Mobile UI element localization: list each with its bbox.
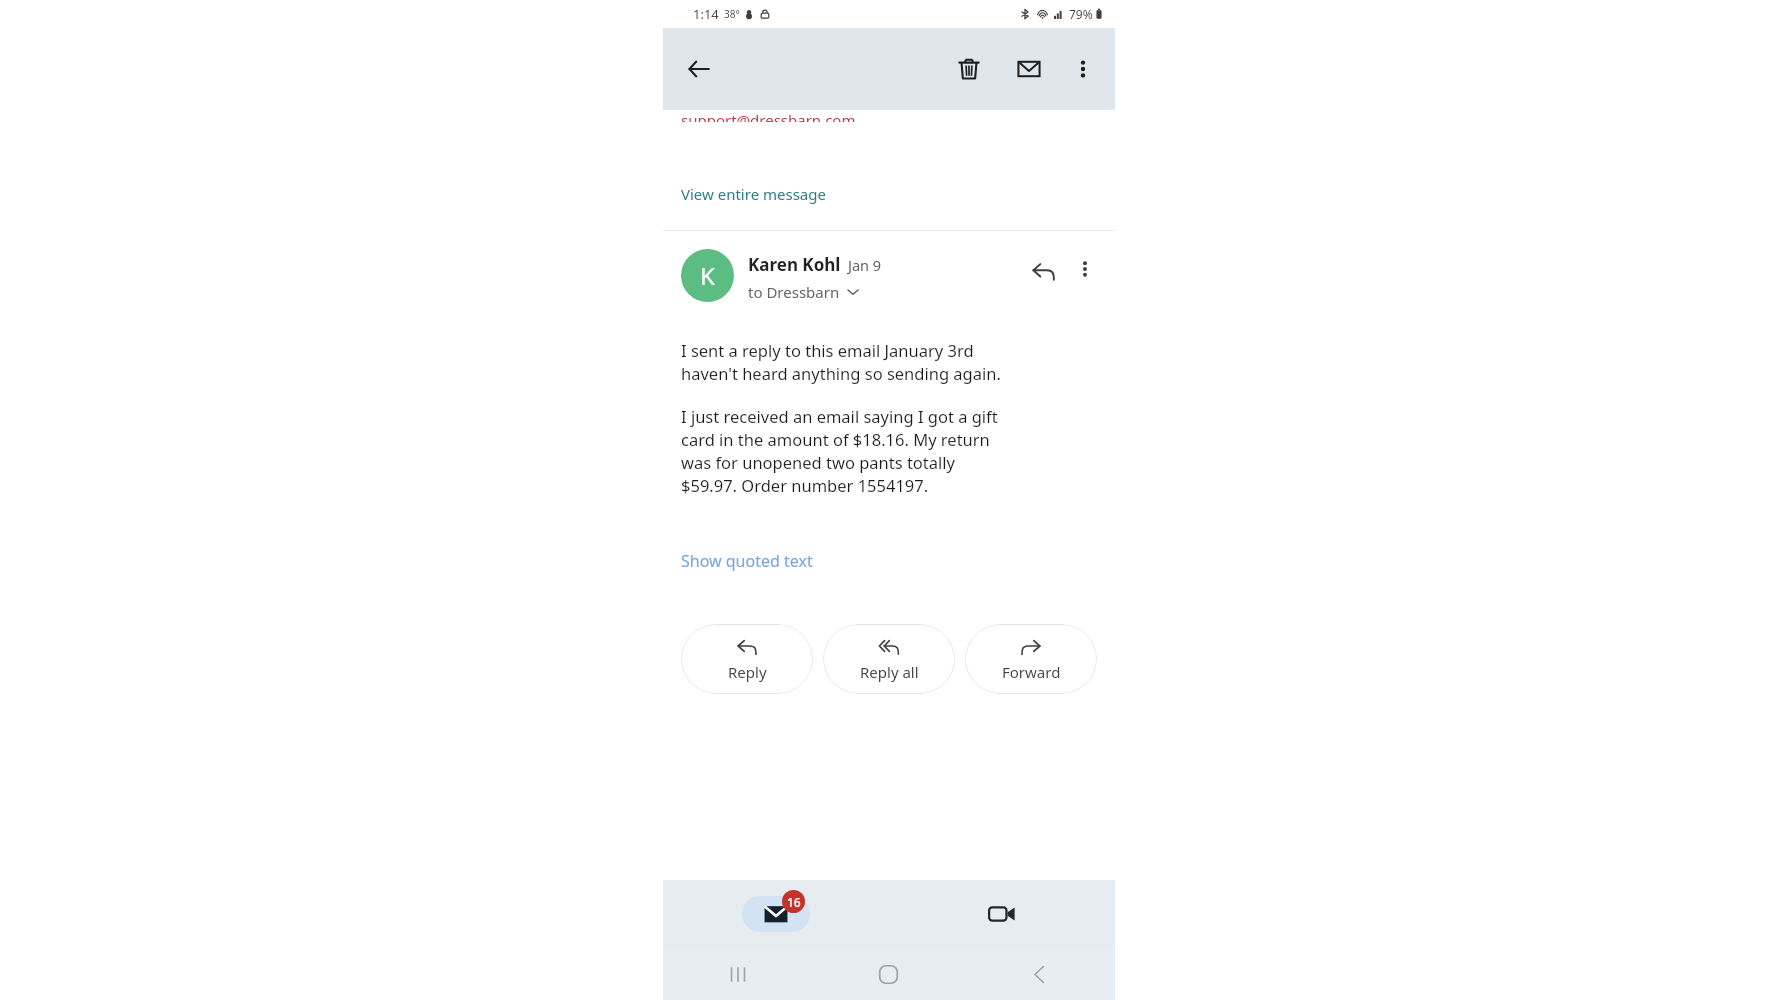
- staticText: 38°: [724, 7, 740, 21]
- button[interactable]: Reply all: [823, 624, 955, 694]
- button[interactable]: to Dressbarn: [748, 282, 859, 302]
- staticText: 1:14: [693, 5, 719, 23]
- staticText: Reply: [728, 662, 767, 682]
- staticText: View entire message: [681, 184, 826, 204]
- button[interactable]: Sender avatar: [681, 249, 734, 302]
- staticText: K: [700, 259, 715, 292]
- staticText: I just received an email saying I got a …: [681, 405, 998, 427]
- button[interactable]: Delete: [945, 45, 993, 93]
- staticText: I sent a reply to this email January 3rd: [681, 339, 974, 361]
- button[interactable]: Mail, 16 unread: [663, 880, 889, 948]
- staticText: Reply all: [860, 662, 919, 682]
- button[interactable]: Back: [675, 45, 723, 93]
- staticText: Jan 9: [848, 255, 882, 275]
- staticText: 79%: [1069, 6, 1093, 22]
- button[interactable]: Reply: [1021, 249, 1065, 293]
- staticText: Karen Kohl: [748, 253, 841, 276]
- staticText: was for unopened two pants totally: [681, 451, 955, 473]
- staticText: support@dressbarn.com: [681, 110, 856, 122]
- staticText: haven't heard anything so sending again.: [681, 362, 1001, 384]
- button[interactable]: Recent apps: [663, 948, 813, 1000]
- button[interactable]: Mark as unread: [1005, 45, 1053, 93]
- button[interactable]: Forward: [965, 624, 1097, 694]
- staticText: 16: [787, 894, 801, 910]
- staticText: to Dressbarn: [748, 282, 840, 302]
- staticText: $59.97. Order number 1554197.: [681, 474, 929, 496]
- staticText: Forward: [1002, 662, 1061, 682]
- button[interactable]: Home: [813, 948, 964, 1000]
- staticText: card in the amount of $18.16. My return: [681, 428, 990, 450]
- button[interactable]: Show quoted text: [681, 546, 813, 576]
- staticText: Show quoted text: [681, 550, 813, 572]
- button[interactable]: View entire message: [681, 180, 826, 208]
- button[interactable]: Meet: [889, 880, 1115, 948]
- button[interactable]: Reply: [681, 624, 813, 694]
- button[interactable]: Back: [964, 948, 1115, 1000]
- button[interactable]: More options: [1059, 45, 1107, 93]
- button[interactable]: More options: [1065, 249, 1105, 289]
